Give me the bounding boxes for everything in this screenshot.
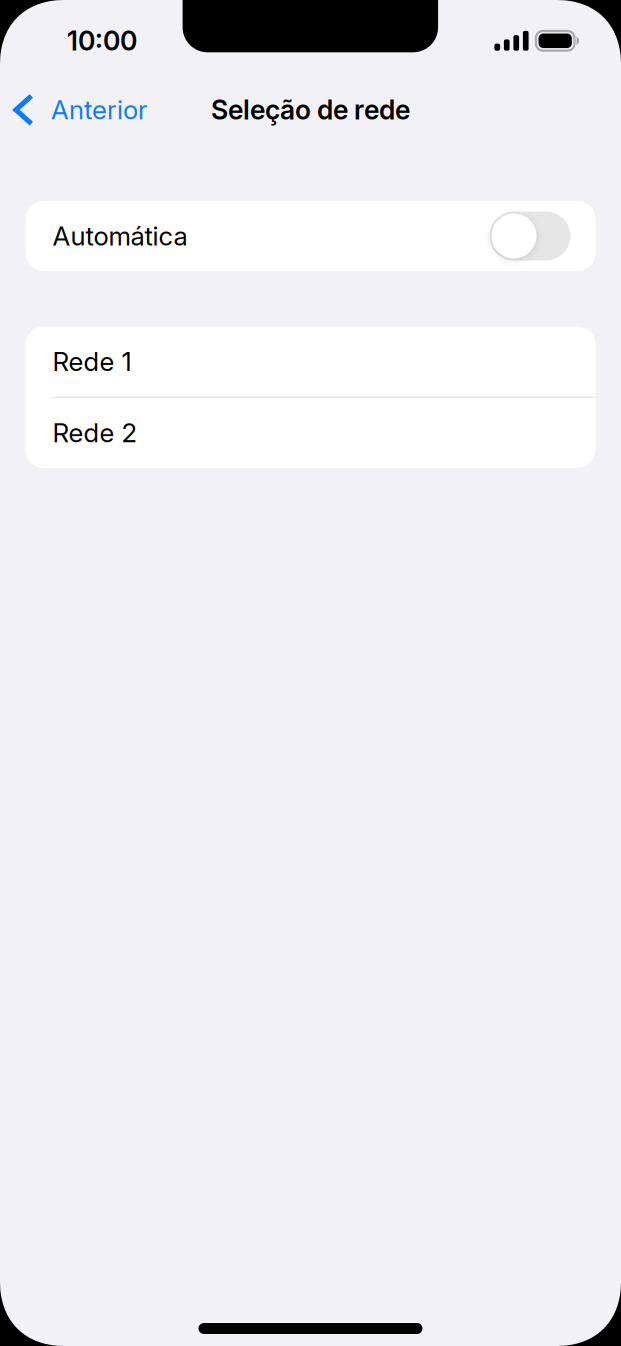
staticText: 10:00 (67, 25, 137, 57)
staticText: Rede 1 (52, 346, 131, 377)
staticText: Seleção de rede (211, 94, 410, 126)
button[interactable]: Automática (25, 201, 595, 271)
staticText: Anterior (51, 94, 147, 126)
button[interactable]: Rede 2 (25, 398, 595, 468)
staticText: Rede 2 (52, 417, 136, 449)
button[interactable]: Anterior (0, 82, 159, 138)
button[interactable]: Rede 1 (25, 327, 595, 397)
staticText: Automática (52, 220, 187, 252)
